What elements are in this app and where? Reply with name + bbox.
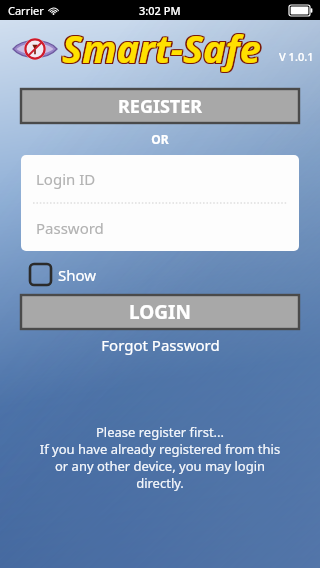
staticText: REGISTER xyxy=(118,94,203,119)
staticText: V 1.0.1 xyxy=(279,49,314,64)
staticText: LOGIN xyxy=(129,299,191,325)
button[interactable]: Login ID xyxy=(21,155,299,202)
staticText: Forgot Password xyxy=(101,335,220,355)
staticText: 3:02 PM xyxy=(139,3,181,18)
button[interactable]: Password xyxy=(21,204,299,251)
staticText: Show xyxy=(58,265,97,285)
button[interactable]: Forgot Password xyxy=(0,335,320,355)
staticText: Please register first... If you have alr… xyxy=(12,423,308,492)
staticText: Login ID xyxy=(36,169,96,189)
staticText: Password xyxy=(36,218,104,238)
button[interactable]: LOGIN xyxy=(21,295,299,329)
button[interactable]: Show xyxy=(30,264,97,285)
staticText: Carrier xyxy=(8,3,44,18)
button[interactable]: REGISTER xyxy=(21,89,299,123)
staticText: OR xyxy=(0,131,320,147)
